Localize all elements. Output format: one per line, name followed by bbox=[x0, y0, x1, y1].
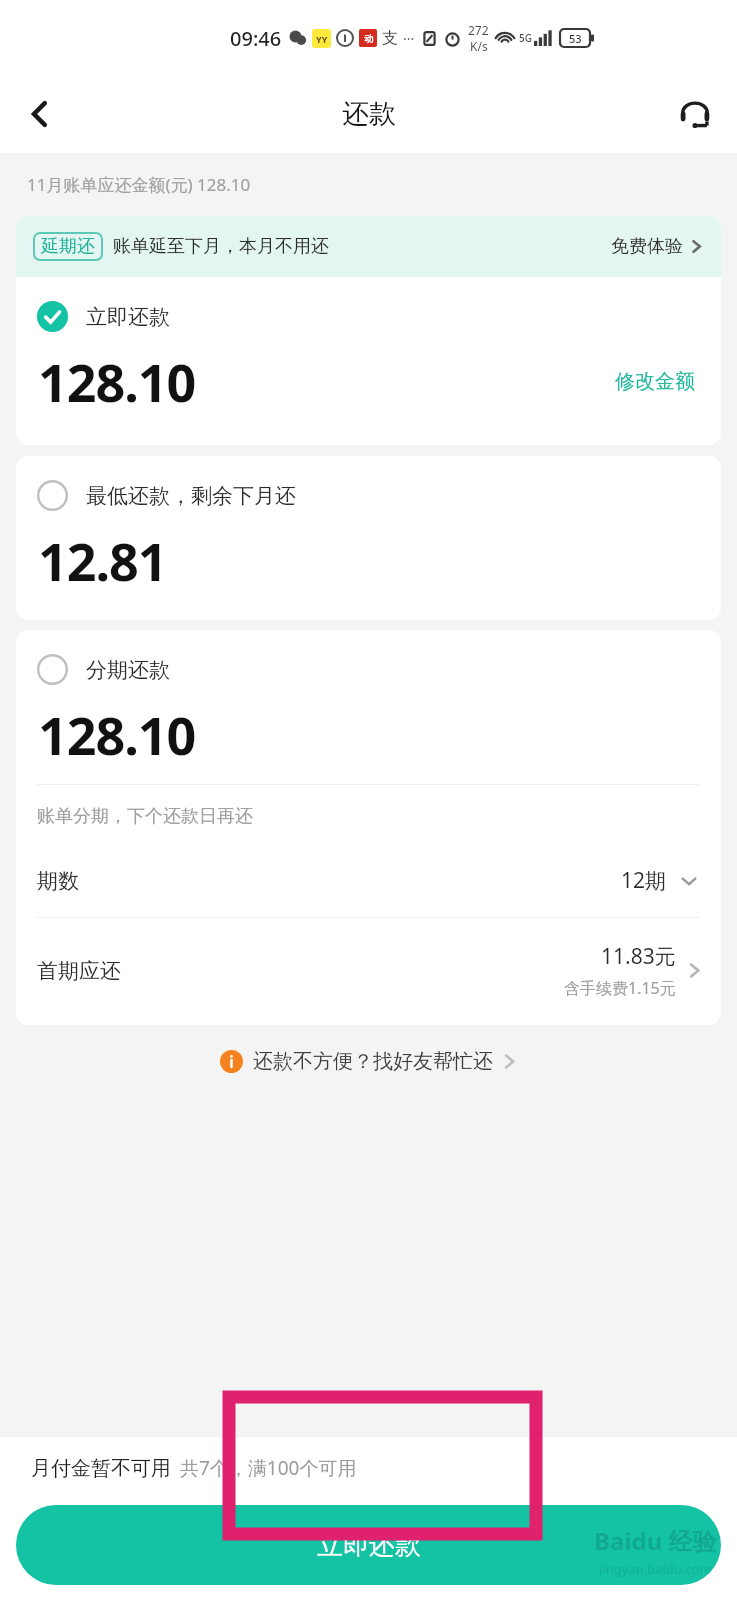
staticText: 128.10 bbox=[38, 346, 196, 417]
staticText: 账单延至下月，本月不用还 bbox=[113, 235, 329, 258]
staticText: 还款 bbox=[342, 97, 396, 131]
staticText: 立即还款 bbox=[86, 304, 170, 330]
staticText: YY bbox=[316, 33, 328, 45]
staticText: 12.81 bbox=[38, 525, 167, 596]
staticText: 5G bbox=[519, 31, 532, 45]
button[interactable]: 延期还 bbox=[16, 216, 721, 277]
button[interactable]: 最低还款，剩余下月还 bbox=[16, 456, 721, 620]
staticText: 立即还款 bbox=[317, 1529, 421, 1562]
staticText: jingyan.baidu.com bbox=[599, 1560, 712, 1578]
staticText: Baidu 经验 bbox=[594, 1524, 717, 1557]
staticText: 128.10 bbox=[38, 699, 196, 770]
staticText: 最低还款，剩余下月还 bbox=[86, 483, 296, 509]
staticText: 延期还 bbox=[41, 235, 95, 258]
staticText: 支 bbox=[382, 28, 398, 48]
staticText: 账单分期，下个还款日再还 bbox=[37, 805, 253, 828]
staticText: 含手续费1.15元 bbox=[564, 977, 676, 999]
button[interactable]: Back bbox=[12, 86, 68, 142]
button[interactable]: 期数 bbox=[16, 866, 721, 917]
staticText: 12期 bbox=[621, 866, 667, 895]
button[interactable]: 分期还款 bbox=[16, 630, 721, 866]
staticText: 共7个，满100个可用 bbox=[180, 1455, 357, 1481]
staticText: 分期还款 bbox=[86, 657, 170, 683]
staticText: 09:46 bbox=[230, 25, 282, 52]
staticText: 动 bbox=[364, 33, 373, 44]
staticText: 272 bbox=[468, 22, 489, 38]
staticText: 月付金暂不可用 bbox=[31, 1456, 171, 1481]
button[interactable]: 还款不方便？找好友帮忙还 bbox=[212, 1043, 526, 1080]
staticText: 免费体验 bbox=[611, 235, 683, 258]
staticText: 还款不方便？找好友帮忙还 bbox=[253, 1049, 493, 1074]
staticText: 11.83元 bbox=[601, 942, 676, 971]
button[interactable]: 立即还款 bbox=[16, 277, 721, 445]
staticText: ··· bbox=[403, 29, 415, 48]
staticText: 首期应还 bbox=[37, 958, 121, 984]
button[interactable]: Customer service bbox=[667, 86, 723, 142]
button[interactable]: 修改金额 bbox=[611, 365, 699, 398]
button[interactable]: 首期应还 bbox=[16, 918, 721, 1025]
staticText: 修改金额 bbox=[615, 369, 695, 394]
staticText: 53 bbox=[569, 31, 582, 46]
button[interactable]: 立即还款 bbox=[16, 1505, 721, 1585]
staticText: K/s bbox=[470, 38, 488, 54]
staticText: 11月账单应还金额(元) 128.10 bbox=[27, 173, 251, 196]
staticText: 期数 bbox=[37, 868, 79, 894]
